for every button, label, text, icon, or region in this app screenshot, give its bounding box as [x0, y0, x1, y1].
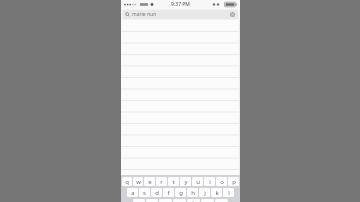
button[interactable]: j: [199, 188, 210, 197]
staticText: p: [232, 178, 236, 186]
button[interactable]: s: [139, 188, 150, 197]
button[interactable]: z: [133, 199, 145, 202]
button[interactable]: a: [127, 188, 138, 197]
button[interactable]: m: [215, 199, 228, 202]
staticText: 9:37 PM: [171, 1, 190, 8]
staticText: l: [228, 189, 230, 197]
staticText: a: [131, 189, 135, 197]
button[interactable]: c: [159, 199, 172, 202]
button[interactable]: o: [216, 177, 227, 186]
button[interactable]: t: [168, 177, 179, 186]
staticText: q: [125, 178, 129, 186]
staticText: e: [148, 178, 152, 186]
button[interactable]: x: [146, 199, 158, 202]
staticText: d: [155, 189, 159, 197]
staticText: b: [192, 199, 196, 202]
button[interactable]: marie nun: [123, 10, 238, 19]
staticText: s: [143, 189, 146, 197]
staticText: marie nun: [132, 11, 229, 18]
staticText: o: [220, 178, 224, 186]
staticText: t: [172, 178, 175, 186]
button[interactable]: b: [187, 199, 200, 202]
button[interactable]: h: [187, 188, 198, 197]
button[interactable]: l: [223, 188, 234, 197]
staticText: f: [167, 189, 170, 197]
button[interactable]: y: [180, 177, 191, 186]
button[interactable]: d: [151, 188, 162, 197]
button[interactable]: e: [144, 177, 155, 186]
button[interactable]: g: [175, 188, 186, 197]
button[interactable]: p: [228, 177, 239, 186]
staticText: y: [184, 178, 188, 186]
staticText: u: [196, 178, 200, 186]
button[interactable]: Clear search: [229, 11, 236, 18]
staticText: r: [160, 178, 163, 186]
button[interactable]: u: [192, 177, 203, 186]
staticText: h: [191, 189, 195, 197]
staticText: w: [136, 178, 141, 186]
staticText: j: [204, 189, 206, 197]
button[interactable]: q: [122, 177, 132, 186]
staticText: i: [209, 178, 211, 186]
staticText: g: [179, 189, 183, 197]
button[interactable]: f: [163, 188, 174, 197]
staticText: k: [215, 189, 219, 197]
button[interactable]: n: [201, 199, 214, 202]
button[interactable]: w: [133, 177, 143, 186]
button[interactable]: r: [156, 177, 167, 186]
button[interactable]: k: [211, 188, 222, 197]
button[interactable]: i: [204, 177, 215, 186]
button[interactable]: v: [173, 199, 186, 202]
